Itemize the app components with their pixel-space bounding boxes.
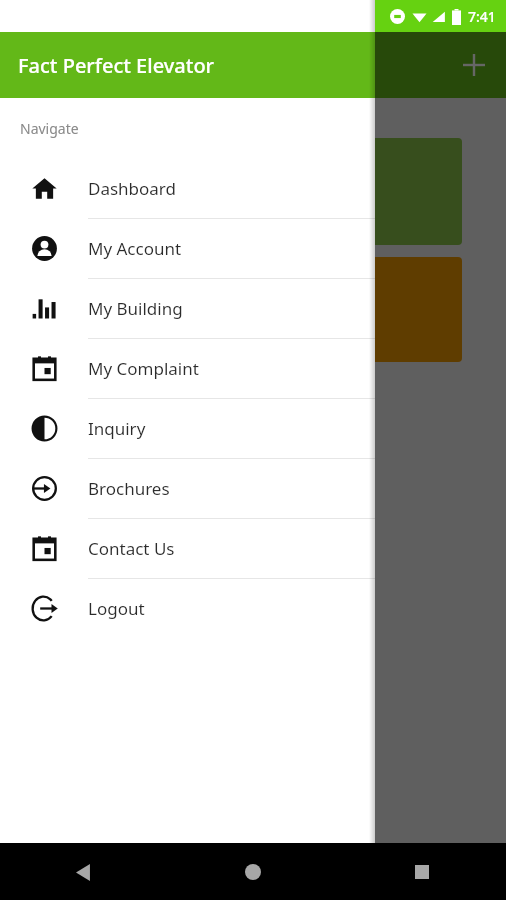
staticText: Fact Perfect Elevator <box>18 52 215 79</box>
staticText: Brochures <box>88 477 170 500</box>
staticText: Fact Perfect Elevator <box>18 52 215 79</box>
staticText: Dashboard <box>88 177 177 200</box>
button[interactable]: Logout <box>0 578 375 638</box>
button[interactable]: My Complaint <box>0 338 375 398</box>
button[interactable]: Back <box>60 848 108 896</box>
button[interactable] <box>22 138 462 245</box>
button[interactable]: Inquiry <box>0 398 375 458</box>
staticText: 7:41 <box>468 7 496 26</box>
button[interactable] <box>22 257 462 362</box>
button[interactable]: My Account <box>0 218 375 278</box>
staticText: My Account <box>88 237 182 260</box>
button[interactable]: Dashboard <box>0 158 375 218</box>
staticText: Contact Us <box>88 537 175 560</box>
button[interactable]: Brochures <box>0 458 375 518</box>
staticText: Logout <box>88 597 145 620</box>
button[interactable]: Recent apps <box>398 848 446 896</box>
staticText: My Complaint <box>88 357 199 380</box>
staticText: Inquiry <box>88 417 146 440</box>
staticText: Navigate <box>20 119 79 138</box>
button[interactable]: Contact Us <box>0 518 375 578</box>
staticText: My Building <box>88 297 183 320</box>
button[interactable]: Add <box>450 41 498 89</box>
button[interactable]: Home <box>229 848 277 896</box>
button[interactable]: My Building <box>0 278 375 338</box>
